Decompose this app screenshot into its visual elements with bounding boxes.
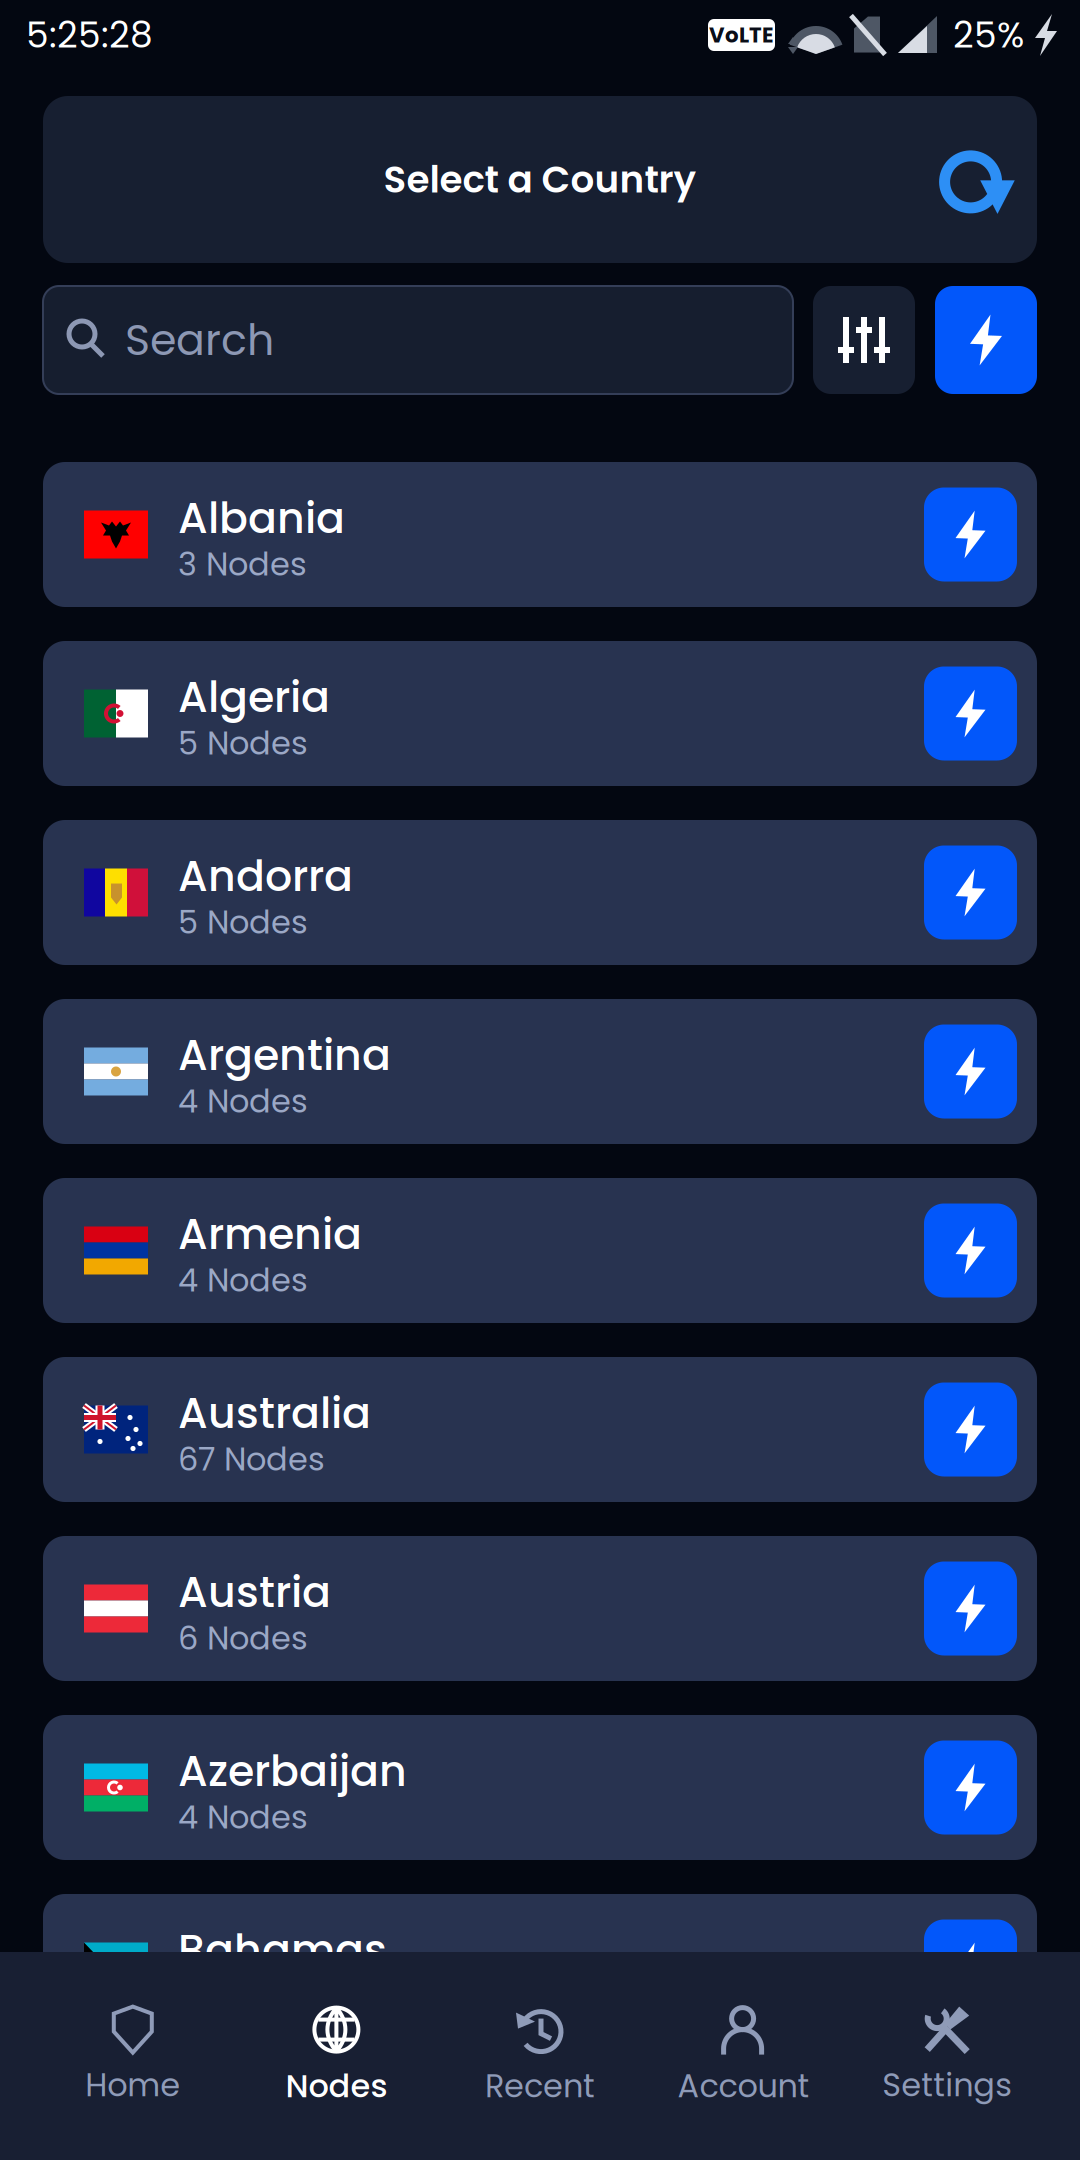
staticText: 4 Nodes xyxy=(178,1258,308,1303)
staticText: Australia xyxy=(178,1383,371,1443)
staticText: Search xyxy=(125,310,274,370)
button[interactable]: Andorra xyxy=(43,820,1037,965)
button[interactable]: Account xyxy=(642,1952,845,2160)
button[interactable]: Home xyxy=(31,1952,235,2160)
button[interactable]: Refresh xyxy=(940,126,1037,233)
staticText: 25% xyxy=(953,10,1024,60)
staticText: Austria xyxy=(178,1562,331,1622)
staticText: Argentina xyxy=(178,1025,391,1085)
staticText: 67 Nodes xyxy=(178,1437,325,1482)
button[interactable]: Filter xyxy=(813,286,915,394)
staticText: Recent xyxy=(485,2064,595,2108)
staticText: Home xyxy=(85,2063,180,2107)
staticText: Albania xyxy=(178,488,345,548)
staticText: 5:25:28 xyxy=(26,10,153,60)
staticText: Azerbaijan xyxy=(178,1741,407,1801)
staticText: Andorra xyxy=(178,846,353,906)
staticText: VoLTE xyxy=(709,20,774,50)
button[interactable]: Australia xyxy=(43,1357,1037,1502)
staticText: 5 Nodes xyxy=(178,721,308,766)
button[interactable]: Bahamas xyxy=(43,1894,1037,2039)
staticText: Bahamas xyxy=(178,1920,387,1980)
button[interactable]: Algeria xyxy=(43,641,1037,786)
staticText: Armenia xyxy=(178,1204,362,1264)
button[interactable]: Argentina xyxy=(43,999,1037,1144)
staticText: 4 Nodes xyxy=(178,1795,308,1840)
button[interactable]: Settings xyxy=(845,1952,1049,2160)
button[interactable]: Albania xyxy=(43,462,1037,607)
button[interactable]: Recent xyxy=(438,1952,642,2160)
button[interactable]: Quick connect xyxy=(935,286,1037,394)
staticText: Select a Country xyxy=(383,153,696,206)
button[interactable]: Nodes xyxy=(235,1952,438,2160)
button[interactable]: Azerbaijan xyxy=(43,1715,1037,1860)
staticText: 4 Nodes xyxy=(178,1079,308,1124)
staticText: Nodes xyxy=(285,2064,387,2108)
staticText: 3 Nodes xyxy=(178,542,307,587)
staticText: 5 Nodes xyxy=(178,900,308,945)
staticText: Settings xyxy=(882,2063,1012,2107)
button[interactable]: Austria xyxy=(43,1536,1037,1681)
staticText: 6 Nodes xyxy=(178,1616,308,1661)
staticText: Account xyxy=(678,2064,810,2108)
staticText: Algeria xyxy=(178,667,330,727)
button[interactable]: Armenia xyxy=(43,1178,1037,1323)
